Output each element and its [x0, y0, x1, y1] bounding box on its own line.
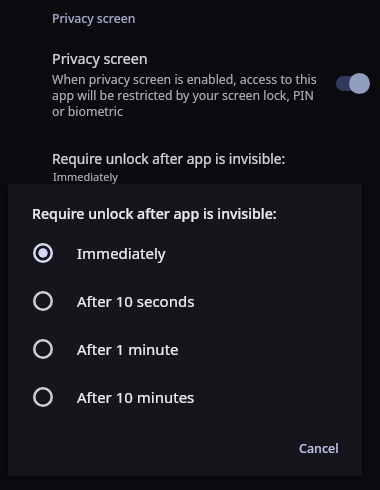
button[interactable]: After 10 minutes	[8, 373, 362, 421]
staticText: After 10 seconds	[77, 291, 195, 311]
staticText: Immediately	[77, 243, 166, 263]
staticText: After 10 minutes	[77, 387, 195, 407]
button[interactable]: After 10 seconds	[8, 277, 362, 325]
staticText: Require unlock after app is invisible:	[32, 204, 277, 223]
staticText: Require unlock after app is invisible:	[52, 149, 286, 168]
staticText: Privacy screen	[52, 10, 136, 27]
button[interactable]: After 1 minute	[8, 325, 362, 373]
button[interactable]: Immediately	[8, 229, 362, 277]
staticText: Privacy screen	[52, 49, 148, 68]
staticText: Cancel	[299, 440, 339, 457]
staticText: Immediately	[53, 169, 118, 184]
button[interactable]: Cancel	[289, 433, 349, 464]
staticText: After 1 minute	[77, 339, 179, 359]
staticText: When privacy screen is enabled, access t…	[52, 71, 320, 120]
button[interactable]: Privacy screen toggle, on	[336, 73, 370, 94]
